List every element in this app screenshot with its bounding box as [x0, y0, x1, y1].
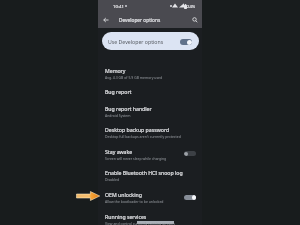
button[interactable]: Enable Bluetooth HCI snoop log: [98, 164, 202, 186]
button[interactable]: Desktop backup password: [98, 121, 202, 143]
staticText: Running services: [105, 213, 147, 220]
button[interactable]: Bug report handler: [98, 100, 202, 121]
staticText: Memory: [105, 67, 126, 74]
staticText: Desktop full backups aren't currently pr…: [105, 134, 181, 139]
staticText: 10:41: [113, 3, 124, 9]
staticText: Stay awake: [105, 148, 133, 155]
button[interactable]: OEM unlocking: [98, 186, 202, 208]
button[interactable]: Toggle Stay awake: [184, 151, 196, 156]
button[interactable]: Toggle OEM unlocking: [184, 195, 196, 200]
staticText: Desktop backup password: [105, 126, 170, 133]
button[interactable]: Stay awake: [98, 143, 202, 164]
staticText: View and control currently running servi…: [105, 221, 175, 225]
button[interactable]: Use Developer options: [102, 32, 199, 50]
staticText: Avg. 4.3 GB of 5.9 GB memory used: [105, 75, 163, 80]
staticText: Enable Bluetooth HCI snoop log: [105, 169, 183, 176]
staticText: 24%: [187, 4, 196, 10]
button[interactable]: Use Developer options toggle: [180, 39, 192, 45]
button[interactable]: Running services: [98, 208, 202, 225]
staticText: Use Developer options: [108, 38, 164, 45]
staticText: Screen will never sleep while charging: [105, 156, 167, 161]
staticText: Bug report handler: [105, 105, 152, 112]
button[interactable]: Search: [188, 13, 202, 27]
staticText: Android System: [105, 113, 131, 118]
staticText: Bug report: [105, 88, 132, 95]
button[interactable]: Back: [99, 13, 113, 27]
staticText: Allow the bootloader to be unlocked: [105, 199, 164, 204]
button[interactable]: Memory: [98, 62, 202, 83]
button[interactable]: Bug report: [98, 83, 202, 100]
staticText: Developer options: [119, 17, 161, 24]
staticText: Disabled: [105, 177, 120, 182]
staticText: OEM unlocking: [105, 191, 142, 198]
